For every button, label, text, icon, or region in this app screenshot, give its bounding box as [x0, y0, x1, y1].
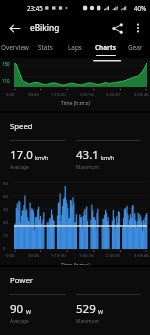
staticText: Speed: [10, 121, 33, 132]
staticText: km/h: [35, 154, 49, 161]
staticText: 50: [3, 180, 8, 186]
button[interactable]: Charts: [90, 40, 120, 58]
staticText: 30:45: [28, 252, 39, 258]
staticText: 1:10:20: [51, 91, 66, 97]
staticText: 20: [3, 219, 8, 225]
staticText: Maximum: [76, 164, 100, 171]
staticText: 1:09:16: [79, 91, 94, 97]
button[interactable]: Stats: [30, 40, 60, 58]
staticText: 110: [2, 78, 10, 84]
staticText: 30: [3, 206, 8, 212]
staticText: 1:50:16: [79, 252, 94, 258]
staticText: Time (h:m:s): [61, 262, 90, 265]
staticText: 1:10:30: [51, 252, 66, 258]
staticText: 40: [3, 193, 8, 199]
staticText: W: [98, 308, 104, 315]
staticText: eBiking: [30, 22, 60, 33]
staticText: Charts: [95, 43, 116, 52]
button[interactable]: Back: [3, 17, 25, 39]
staticText: Gear: [128, 43, 143, 52]
button[interactable]: Laps: [60, 40, 90, 58]
staticText: 529: [76, 301, 96, 317]
staticText: 30:45: [28, 91, 39, 97]
staticText: Laps: [68, 43, 82, 52]
staticText: 3:18:46: [134, 252, 149, 258]
staticText: 0:00: [6, 91, 15, 97]
staticText: Average: [10, 318, 29, 325]
button[interactable]: More options: [128, 18, 148, 38]
button[interactable]: Overview: [0, 40, 30, 58]
staticText: 2:30:01: [106, 252, 121, 258]
staticText: Stats: [38, 43, 53, 52]
staticText: 0: [3, 245, 6, 251]
staticText: W: [26, 308, 32, 315]
button[interactable]: Share: [106, 17, 128, 39]
staticText: km/h: [101, 154, 115, 161]
button[interactable]: Gear: [120, 40, 150, 58]
staticText: 0:00: [6, 252, 15, 258]
staticText: Time (h:m:s): [61, 100, 90, 107]
staticText: 10: [3, 232, 8, 238]
staticText: 3:18:46: [134, 91, 149, 97]
staticText: 90: [10, 301, 24, 317]
staticText: Overview: [1, 43, 29, 52]
staticText: Power: [10, 275, 34, 286]
staticText: 23:45: [27, 4, 43, 12]
staticText: 40%: [134, 4, 147, 12]
staticText: 43.1: [76, 147, 99, 163]
staticText: Maximum: [76, 318, 100, 325]
staticText: 2:30:01: [106, 91, 121, 97]
staticText: 17.0: [10, 147, 33, 163]
staticText: 150: [2, 61, 10, 67]
staticText: Average: [10, 164, 29, 171]
